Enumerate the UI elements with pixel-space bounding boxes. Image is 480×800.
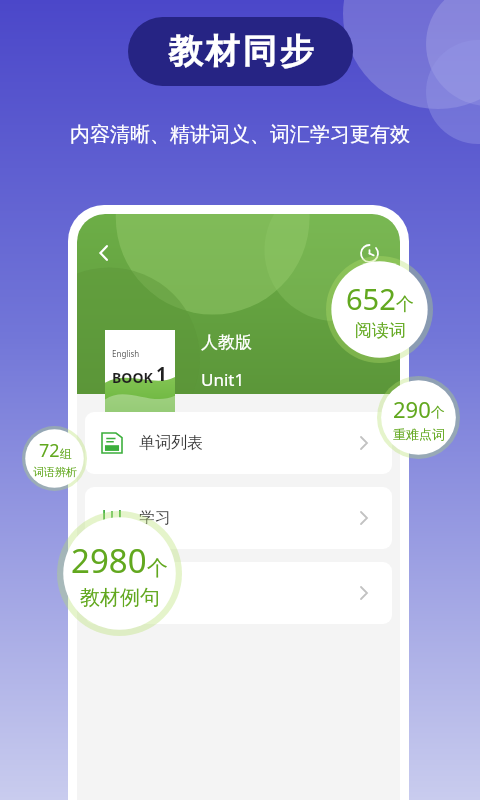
staticText: 重难点词 <box>393 426 445 442</box>
staticText: 72 <box>39 438 60 463</box>
staticText: 内容清晰、精讲词义、词汇学习更有效 <box>70 122 410 147</box>
staticText: 教材例句 <box>80 585 160 610</box>
staticText: 2980 <box>71 538 147 583</box>
staticText: BOOK <box>112 368 153 387</box>
staticText: 学习 <box>139 508 171 528</box>
button[interactable]: 学习 <box>85 487 392 549</box>
button[interactable]: Back <box>87 236 121 270</box>
button[interactable]: History <box>352 236 386 270</box>
staticText: 290 <box>393 394 431 424</box>
staticText: English <box>112 348 140 359</box>
staticText: 个 <box>396 293 414 316</box>
staticText: 阅读词 <box>355 320 406 341</box>
button[interactable]: 单词列表 <box>85 412 392 474</box>
button[interactable]: 教材同步 <box>128 17 353 86</box>
staticText: 单词列表 <box>139 433 203 453</box>
staticText: 组 <box>60 446 72 461</box>
staticText: 个 <box>431 404 445 422</box>
staticText: 个 <box>147 555 168 581</box>
staticText: 词语辨析 <box>33 465 77 479</box>
staticText: 652 <box>346 279 396 318</box>
staticText: 1 <box>156 361 167 387</box>
staticText: 教材同步 <box>167 30 315 73</box>
button[interactable] <box>85 562 392 624</box>
staticText: Unit1 <box>201 368 245 391</box>
staticText: 人教版 <box>201 332 252 353</box>
